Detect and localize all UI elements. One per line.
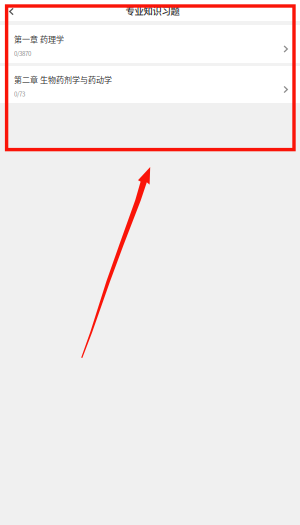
staticText: 专业知识习题 xyxy=(125,4,179,17)
button[interactable]: 第二章 生物药剂学与药动学 xyxy=(0,66,300,103)
staticText: 第二章 生物药剂学与药动学 xyxy=(14,74,112,85)
button[interactable]: Back xyxy=(0,0,22,21)
staticText: 0/73 xyxy=(14,89,25,98)
staticText: 第一章 药理学 xyxy=(14,33,64,45)
staticText: 0/3870 xyxy=(14,49,31,58)
button[interactable]: 第一章 药理学 xyxy=(0,25,300,63)
